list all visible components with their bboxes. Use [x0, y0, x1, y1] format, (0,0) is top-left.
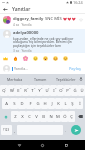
button[interactable]: 3	[15, 85, 22, 96]
staticText: 5	[34, 86, 36, 89]
button[interactable]: Emoji	[21, 54, 29, 62]
button[interactable]: H	[41, 98, 48, 109]
button[interactable]: D	[18, 98, 26, 109]
button[interactable]: Gönder	[68, 125, 84, 135]
staticText: D	[20, 101, 24, 107]
button[interactable]: Ş	[69, 98, 76, 109]
staticText: H	[43, 101, 47, 107]
button[interactable]: ?123	[1, 125, 12, 135]
button[interactable]: Teşekkürler	[53, 74, 78, 84]
button[interactable]: V	[33, 111, 40, 122]
button[interactable]: Emoji	[31, 54, 39, 62]
staticText: SNC MİS	[45, 16, 62, 22]
staticText: Tamam	[34, 77, 47, 82]
button[interactable]: Sil	[75, 111, 85, 122]
staticText: Ş	[71, 101, 74, 107]
staticText: C	[28, 114, 31, 120]
button[interactable]: J	[48, 98, 55, 109]
button[interactable]: Ses	[78, 74, 83, 84]
staticText: adelya00000	[13, 30, 39, 36]
button[interactable]: 4	[22, 85, 29, 96]
staticText: U	[45, 88, 49, 94]
button[interactable]: adelya00000	[0, 29, 85, 53]
button[interactable]: Emoji	[41, 54, 49, 62]
staticText: Yanıtla...	[14, 66, 29, 71]
button[interactable]: Emoji	[11, 54, 19, 62]
button[interactable]: S	[10, 98, 18, 109]
staticText: 3 sa Yanıtla	[13, 49, 32, 52]
button[interactable]: L	[62, 98, 69, 109]
button[interactable]: Ana ekran	[38, 141, 47, 150]
button[interactable]: Tamam	[28, 74, 53, 84]
button[interactable]: N	[47, 111, 54, 122]
staticText: X	[21, 114, 24, 120]
button[interactable]: diggory_family	[0, 14, 85, 29]
button[interactable]: F	[26, 98, 34, 109]
staticText: 16:24	[73, 0, 83, 5]
button[interactable]: 0	[64, 85, 71, 96]
staticText: W	[10, 88, 14, 94]
staticText: O	[59, 88, 63, 94]
staticText: E	[17, 88, 20, 94]
staticText: N	[49, 114, 53, 120]
staticText: Ö	[63, 114, 67, 120]
staticText: V	[35, 114, 38, 120]
button[interactable]: M	[54, 111, 61, 122]
staticText: 3	[20, 86, 22, 89]
button[interactable]: Son uygulamalar	[62, 141, 71, 150]
button[interactable]: ,	[12, 125, 17, 135]
button[interactable]: Shift	[0, 111, 11, 122]
staticText: R	[24, 88, 27, 94]
staticText: 0	[69, 86, 71, 89]
staticText: İ	[79, 101, 81, 107]
staticText: Merhaba	[7, 77, 23, 82]
button[interactable]: Emoji	[61, 54, 69, 62]
button[interactable]: Ö	[61, 111, 68, 122]
button[interactable]: B	[40, 111, 47, 122]
button[interactable]: Paylaş	[68, 65, 82, 72]
button[interactable]: Ç	[68, 111, 75, 122]
staticText: Yanıtlar	[12, 6, 31, 13]
button[interactable]: K	[55, 98, 62, 109]
button[interactable]: Geri	[15, 141, 24, 150]
staticText: L	[64, 101, 67, 107]
button[interactable]: 2	[8, 85, 15, 96]
staticText: 1	[5, 86, 7, 89]
button[interactable]: A	[2, 98, 10, 109]
button[interactable]: 7	[43, 85, 50, 96]
staticText: Ç	[70, 114, 73, 120]
button[interactable]: G	[34, 98, 41, 109]
button[interactable]: 1	[0, 85, 8, 96]
button[interactable]: 6	[36, 85, 43, 96]
staticText: Paylaş	[69, 66, 81, 71]
staticText: M	[56, 114, 60, 120]
staticText: A	[5, 101, 8, 107]
button[interactable]: İ	[76, 98, 83, 109]
button[interactable]: .	[63, 125, 68, 135]
button[interactable]: Ü	[78, 85, 85, 96]
staticText: .	[65, 128, 66, 133]
button[interactable]: X	[19, 111, 26, 122]
button[interactable]: Merhaba	[2, 74, 28, 84]
staticText: 8	[55, 86, 57, 89]
button[interactable]: 8	[50, 85, 57, 96]
staticText: K	[57, 101, 60, 107]
staticText: G	[36, 101, 40, 107]
staticText: S	[13, 101, 16, 107]
staticText: 7	[48, 86, 50, 89]
staticText: kuşundan, ellerinde ne çok şey saklıyor …	[13, 36, 83, 48]
button[interactable]: Ğ	[71, 85, 78, 96]
button[interactable]: 9	[57, 85, 64, 96]
button[interactable]: Emoji	[51, 54, 59, 62]
button[interactable]: Emoji	[1, 54, 9, 62]
staticText: Ğ	[73, 88, 77, 94]
staticText: Y	[38, 88, 41, 94]
button[interactable]: Z	[11, 111, 19, 122]
button[interactable]: C	[26, 111, 33, 122]
button[interactable]: 5	[29, 85, 36, 96]
staticText: Teşekkürler	[56, 77, 76, 82]
staticText: Z	[14, 114, 17, 120]
staticText: 2	[13, 86, 15, 89]
button[interactable]: Geri	[2, 6, 9, 13]
